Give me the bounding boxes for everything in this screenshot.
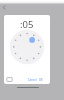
- staticText: Cancel: [28, 78, 37, 82]
- button[interactable]: OK: [37, 76, 44, 84]
- staticText: :05: [20, 18, 34, 29]
- button[interactable]: Navigate up: [0, 3, 9, 12]
- button[interactable]: Switch to text input: [5, 75, 14, 84]
- button[interactable]: Cancel: [27, 76, 37, 84]
- staticText: OK: [39, 78, 43, 82]
